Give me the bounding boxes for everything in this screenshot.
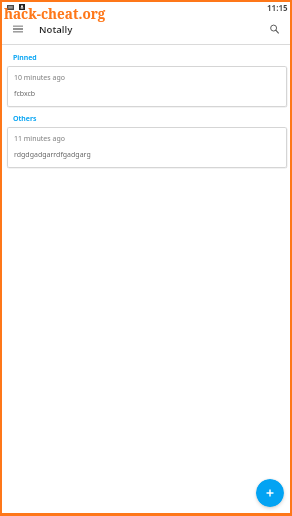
staticText: 11 minutes ago [14, 134, 65, 144]
button[interactable]: Menu [8, 19, 28, 39]
staticText: 11:15 [267, 2, 288, 13]
button[interactable]: Create note [256, 479, 284, 507]
staticText: Notally [39, 23, 73, 36]
staticText: Pinned [13, 53, 37, 63]
button[interactable]: 11 minutes ago [7, 127, 287, 168]
staticText: rdgdgadgarrdfgadgarg [14, 150, 91, 160]
staticText: fcbxcb [14, 89, 36, 99]
button[interactable]: Search [265, 20, 283, 38]
button[interactable]: 10 minutes ago [7, 66, 287, 107]
staticText: 10 minutes ago [14, 73, 65, 83]
staticText: hack-cheat.org [4, 5, 106, 23]
staticText: Others [13, 114, 37, 124]
